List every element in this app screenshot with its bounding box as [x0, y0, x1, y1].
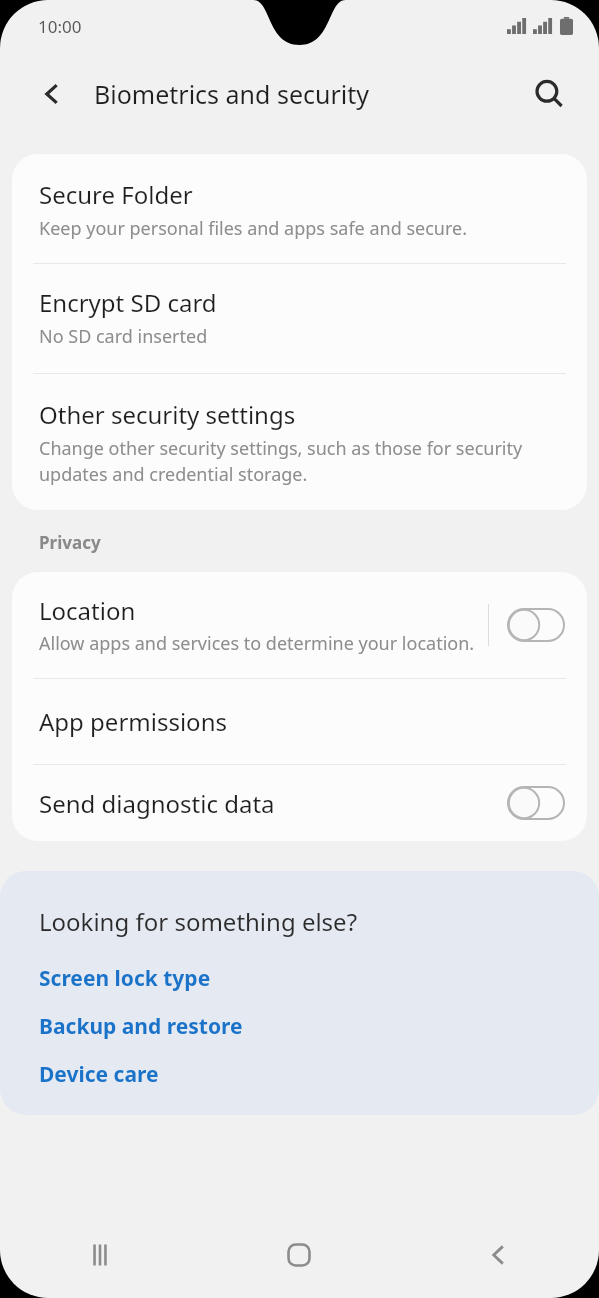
button[interactable]: Search — [523, 68, 575, 120]
button[interactable]: Send diagnostic data — [12, 765, 587, 841]
button[interactable]: Device care — [39, 1060, 159, 1089]
staticText: Backup and restore — [39, 1012, 243, 1041]
staticText: Send diagnostic data — [39, 787, 507, 820]
staticText: Location — [39, 594, 136, 627]
staticText: Encrypt SD card — [39, 286, 217, 319]
staticText: Change other security settings, such as … — [39, 436, 560, 486]
button[interactable]: Other security settings — [12, 374, 587, 510]
button[interactable]: Back — [26, 68, 78, 120]
staticText: Keep your personal files and apps safe a… — [39, 216, 467, 241]
button[interactable]: Secure Folder — [12, 154, 587, 263]
button[interactable]: Encrypt SD card — [12, 264, 587, 373]
staticText: Other security settings — [39, 398, 296, 431]
button[interactable]: Toggle off — [507, 786, 565, 820]
button[interactable]: Screen lock type — [39, 964, 211, 993]
staticText: Screen lock type — [39, 964, 211, 993]
staticText: 10:00 — [38, 15, 82, 38]
button[interactable]: Home — [199, 1212, 399, 1298]
staticText: No SD card inserted — [39, 324, 208, 349]
staticText: App permissions — [39, 705, 227, 738]
staticText: Looking for something else? — [39, 905, 358, 938]
button[interactable]: Toggle off — [507, 608, 565, 642]
button[interactable]: Back — [399, 1212, 599, 1298]
button[interactable]: Location — [12, 572, 587, 678]
staticText: Secure Folder — [39, 178, 193, 211]
staticText: Privacy — [39, 531, 101, 554]
staticText: Biometrics and security — [94, 77, 370, 111]
staticText: Allow apps and services to determine you… — [39, 631, 475, 656]
button[interactable]: App permissions — [12, 679, 587, 764]
staticText: Device care — [39, 1060, 159, 1089]
button[interactable]: Backup and restore — [39, 1012, 243, 1041]
button[interactable]: Recents — [0, 1212, 199, 1298]
